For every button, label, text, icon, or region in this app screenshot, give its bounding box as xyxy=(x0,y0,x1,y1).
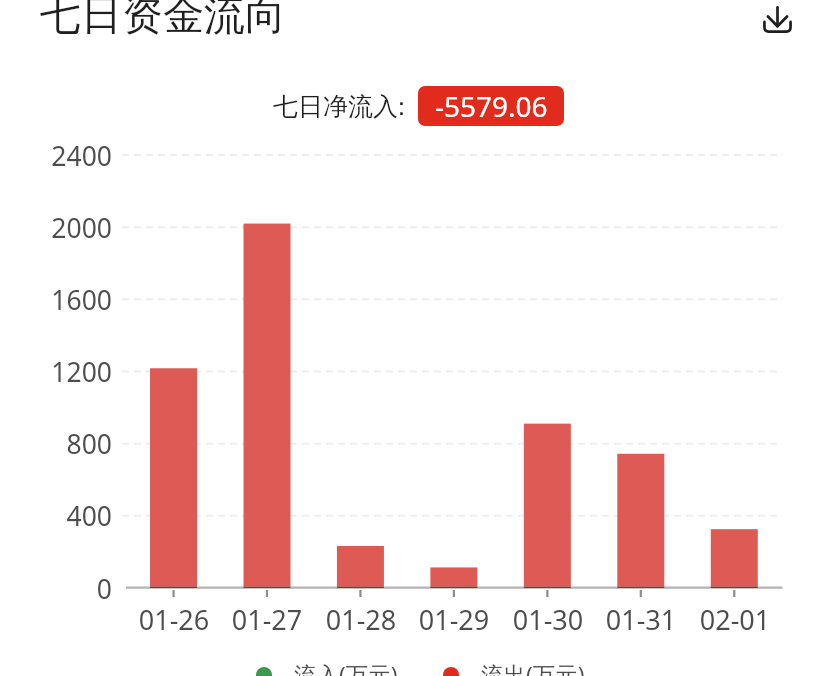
staticText: 01-29 xyxy=(394,601,514,638)
staticText: 400 xyxy=(2,498,112,534)
staticText: 1200 xyxy=(2,354,112,390)
button[interactable]: 流入(万元) xyxy=(250,655,402,676)
button[interactable]: Download xyxy=(749,0,805,47)
staticText: 七日净流入 xyxy=(273,91,398,122)
staticText: 01-28 xyxy=(301,601,421,638)
staticText: 2400 xyxy=(2,138,112,174)
staticText: 02-01 xyxy=(675,601,795,638)
button[interactable]: 流出(万元) xyxy=(437,655,589,676)
staticText: 流出(万元) xyxy=(481,659,585,676)
staticText: 800 xyxy=(2,426,112,462)
staticText: 01-27 xyxy=(207,601,327,638)
staticText: -5579.06 xyxy=(435,87,548,125)
button[interactable]: 七日净流入 xyxy=(273,91,398,122)
staticText: ： xyxy=(389,91,414,122)
button[interactable]: -5579.06 xyxy=(418,86,564,126)
staticText: 01-30 xyxy=(488,601,608,638)
button[interactable]: 七日资金流向 xyxy=(40,0,286,42)
staticText: 流入(万元) xyxy=(294,659,398,676)
staticText: 2000 xyxy=(2,210,112,246)
staticText: 01-31 xyxy=(581,601,701,638)
staticText: 七日资金流向 xyxy=(40,0,286,42)
staticText: 0 xyxy=(2,571,112,607)
staticText: 1600 xyxy=(2,282,112,318)
staticText: 01-26 xyxy=(114,601,234,638)
